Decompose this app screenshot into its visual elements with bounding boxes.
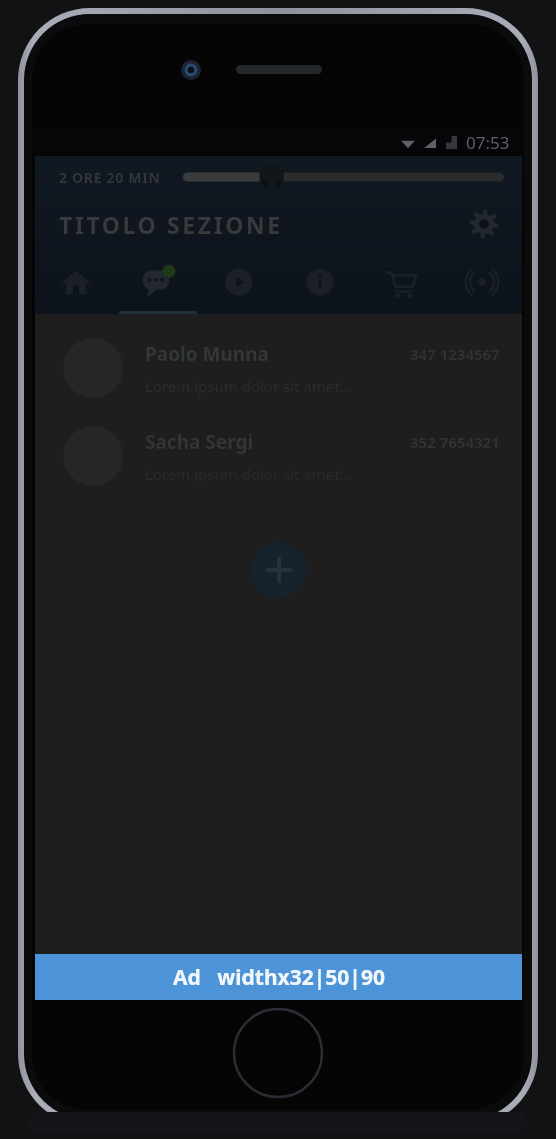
staticText: Lorem ipsum dolor sit amet... — [145, 464, 352, 484]
button[interactable]: Tab 3 — [198, 250, 279, 314]
staticText: Lorem ipsum dolor sit amet... — [145, 376, 352, 396]
staticText: 2 ORE 20 MIN — [59, 168, 161, 187]
button[interactable]: Tab 4 — [279, 250, 360, 314]
staticText: 07:53 — [466, 131, 510, 154]
button[interactable]: Add — [251, 542, 307, 598]
button[interactable]: Paolo Munna — [35, 324, 522, 412]
button[interactable]: Tab 1 — [35, 250, 117, 314]
staticText: 352 7654321 — [410, 432, 500, 452]
staticText: 347 1234567 — [410, 344, 500, 364]
button[interactable]: Ad widthx32|50|90 — [35, 954, 522, 1000]
button[interactable]: Settings — [462, 202, 506, 246]
staticText: Paolo Munna — [145, 341, 269, 367]
button[interactable]: Tab 2 — [117, 250, 198, 314]
staticText: Ad widthx32|50|90 — [173, 963, 385, 992]
staticText: TITOLO SEZIONE — [59, 209, 283, 240]
button[interactable]: Sacha Sergi — [35, 412, 522, 500]
staticText: Sacha Sergi — [145, 429, 254, 455]
